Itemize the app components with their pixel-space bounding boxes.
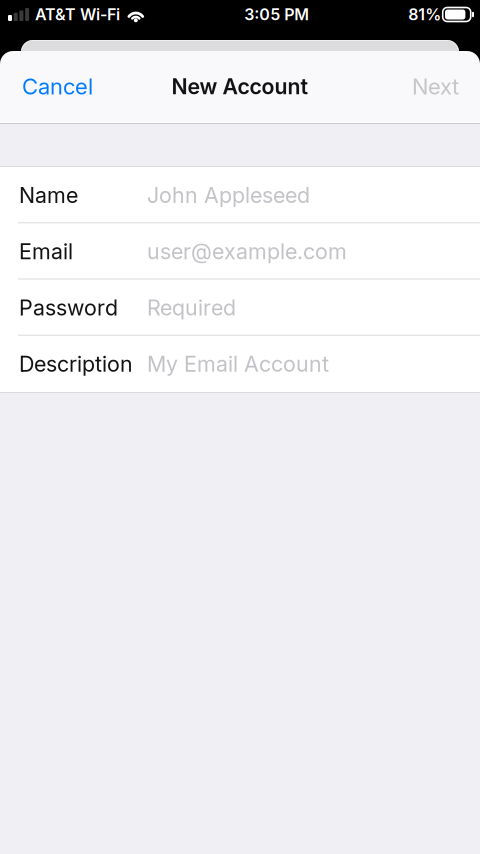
staticText: 81% bbox=[408, 5, 441, 24]
button[interactable]: Description bbox=[0, 336, 480, 392]
button[interactable]: Name bbox=[0, 167, 480, 223]
staticText: Name bbox=[19, 182, 78, 208]
staticText: My Email Account bbox=[147, 351, 329, 377]
button[interactable]: Email bbox=[0, 223, 480, 279]
button[interactable]: Cancel bbox=[0, 51, 115, 122]
staticText: 3:05 PM bbox=[244, 5, 309, 24]
staticText: Required bbox=[147, 295, 236, 321]
staticText: Password bbox=[19, 295, 118, 321]
button[interactable]: Next bbox=[391, 51, 480, 122]
staticText: Email bbox=[19, 238, 73, 264]
staticText: user@example.com bbox=[147, 238, 347, 264]
staticText: Description bbox=[19, 351, 133, 377]
staticText: Cancel bbox=[22, 73, 93, 100]
button[interactable]: Password bbox=[0, 279, 480, 336]
staticText: Next bbox=[412, 73, 459, 100]
staticText: New Account bbox=[171, 74, 308, 99]
staticText: John Appleseed bbox=[147, 182, 310, 208]
staticText: AT&T Wi-Fi bbox=[35, 5, 120, 24]
